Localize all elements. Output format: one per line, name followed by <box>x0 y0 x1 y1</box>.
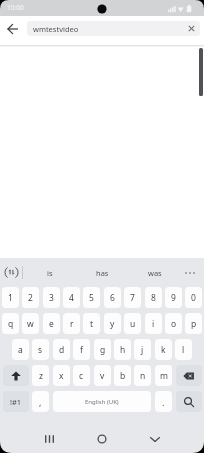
button[interactable]: m <box>155 365 172 386</box>
button[interactable]: x <box>53 365 70 386</box>
button[interactable]: 3 <box>43 287 60 308</box>
staticText: q <box>8 318 14 330</box>
button[interactable]: u <box>124 313 141 334</box>
button[interactable]: 4 <box>63 287 80 308</box>
button[interactable]: v <box>94 365 111 386</box>
staticText: u <box>130 318 136 330</box>
button[interactable]: has <box>84 258 120 287</box>
button[interactable]: z <box>32 365 49 386</box>
button[interactable]: r <box>63 313 80 334</box>
staticText: 7 <box>130 292 135 304</box>
button[interactable]: 1 <box>2 287 19 308</box>
button[interactable]: b <box>114 365 131 386</box>
button[interactable]: !#1 <box>3 391 29 412</box>
button[interactable]: h <box>114 339 131 360</box>
button[interactable]: o <box>165 313 182 334</box>
button[interactable]: g <box>94 339 111 360</box>
staticText: b <box>120 370 126 382</box>
staticText: w <box>27 318 34 330</box>
button[interactable]: 5 <box>83 287 100 308</box>
button[interactable]: wmtestvideo <box>27 21 200 36</box>
button[interactable]: is <box>32 258 68 287</box>
staticText: d <box>59 344 65 356</box>
button[interactable]: 0 <box>185 287 202 308</box>
staticText: v <box>100 370 105 382</box>
staticText: 2 <box>28 292 33 304</box>
button[interactable] <box>176 391 202 412</box>
button[interactable] <box>40 430 58 448</box>
button[interactable]: was <box>137 258 173 287</box>
staticText: n <box>140 370 146 382</box>
button[interactable]: f <box>73 339 90 360</box>
staticText: i <box>152 318 155 330</box>
button[interactable]: 6 <box>104 287 121 308</box>
button[interactable]: w <box>22 313 39 334</box>
button[interactable]: 8 <box>145 287 162 308</box>
staticText: l <box>182 344 185 356</box>
staticText: 10:00 <box>7 3 24 12</box>
button[interactable] <box>146 430 164 448</box>
button[interactable] <box>4 20 22 38</box>
staticText: , <box>39 396 42 408</box>
button[interactable]: , <box>32 391 49 412</box>
button[interactable]: 7 <box>124 287 141 308</box>
button[interactable]: l <box>175 339 192 360</box>
staticText: c <box>79 370 84 382</box>
button[interactable]: 9 <box>165 287 182 308</box>
button[interactable]: n <box>134 365 151 386</box>
staticText: r <box>70 318 74 330</box>
button[interactable]: d <box>53 339 70 360</box>
button[interactable]: English (UK) <box>53 391 151 412</box>
staticText: . <box>162 396 165 408</box>
staticText: g <box>100 344 106 356</box>
staticText: p <box>191 318 197 330</box>
staticText: y <box>110 318 115 330</box>
staticText: f <box>80 344 83 356</box>
button[interactable]: a <box>12 339 29 360</box>
staticText: a <box>18 344 23 356</box>
button[interactable]: y <box>104 313 121 334</box>
staticText: English (UK) <box>85 398 119 406</box>
button[interactable]: 2 <box>22 287 39 308</box>
staticText: t <box>90 318 94 330</box>
button[interactable] <box>3 264 20 281</box>
button[interactable] <box>176 365 202 386</box>
button[interactable]: k <box>155 339 172 360</box>
button[interactable] <box>93 430 111 448</box>
staticText: e <box>49 318 54 330</box>
staticText: o <box>171 318 177 330</box>
staticText: 8 <box>151 292 156 304</box>
staticText: 6 <box>110 292 115 304</box>
staticText: k <box>161 344 166 356</box>
button[interactable]: j <box>134 339 151 360</box>
staticText: j <box>141 344 144 356</box>
button[interactable]: i <box>145 313 162 334</box>
staticText: 5 <box>89 292 94 304</box>
button[interactable]: . <box>155 391 172 412</box>
staticText: has <box>96 268 109 278</box>
staticText: was <box>148 268 162 278</box>
button[interactable] <box>3 365 29 386</box>
staticText: z <box>39 370 43 382</box>
staticText: x <box>59 370 64 382</box>
button[interactable]: c <box>73 365 90 386</box>
staticText: 4 <box>69 292 74 304</box>
button[interactable] <box>180 263 200 282</box>
button[interactable]: s <box>32 339 49 360</box>
button[interactable]: e <box>43 313 60 334</box>
staticText: is <box>47 268 53 278</box>
staticText: 1 <box>8 292 13 304</box>
staticText: h <box>120 344 126 356</box>
staticText: 9 <box>171 292 176 304</box>
staticText: 3 <box>49 292 54 304</box>
button[interactable]: q <box>2 313 19 334</box>
staticText: s <box>38 344 43 356</box>
button[interactable]: p <box>185 313 202 334</box>
staticText: 0 <box>191 292 196 304</box>
staticText: !#1 <box>10 397 22 407</box>
staticText: m <box>160 370 168 382</box>
staticText: wmtestvideo <box>33 24 79 34</box>
button[interactable]: t <box>83 313 100 334</box>
